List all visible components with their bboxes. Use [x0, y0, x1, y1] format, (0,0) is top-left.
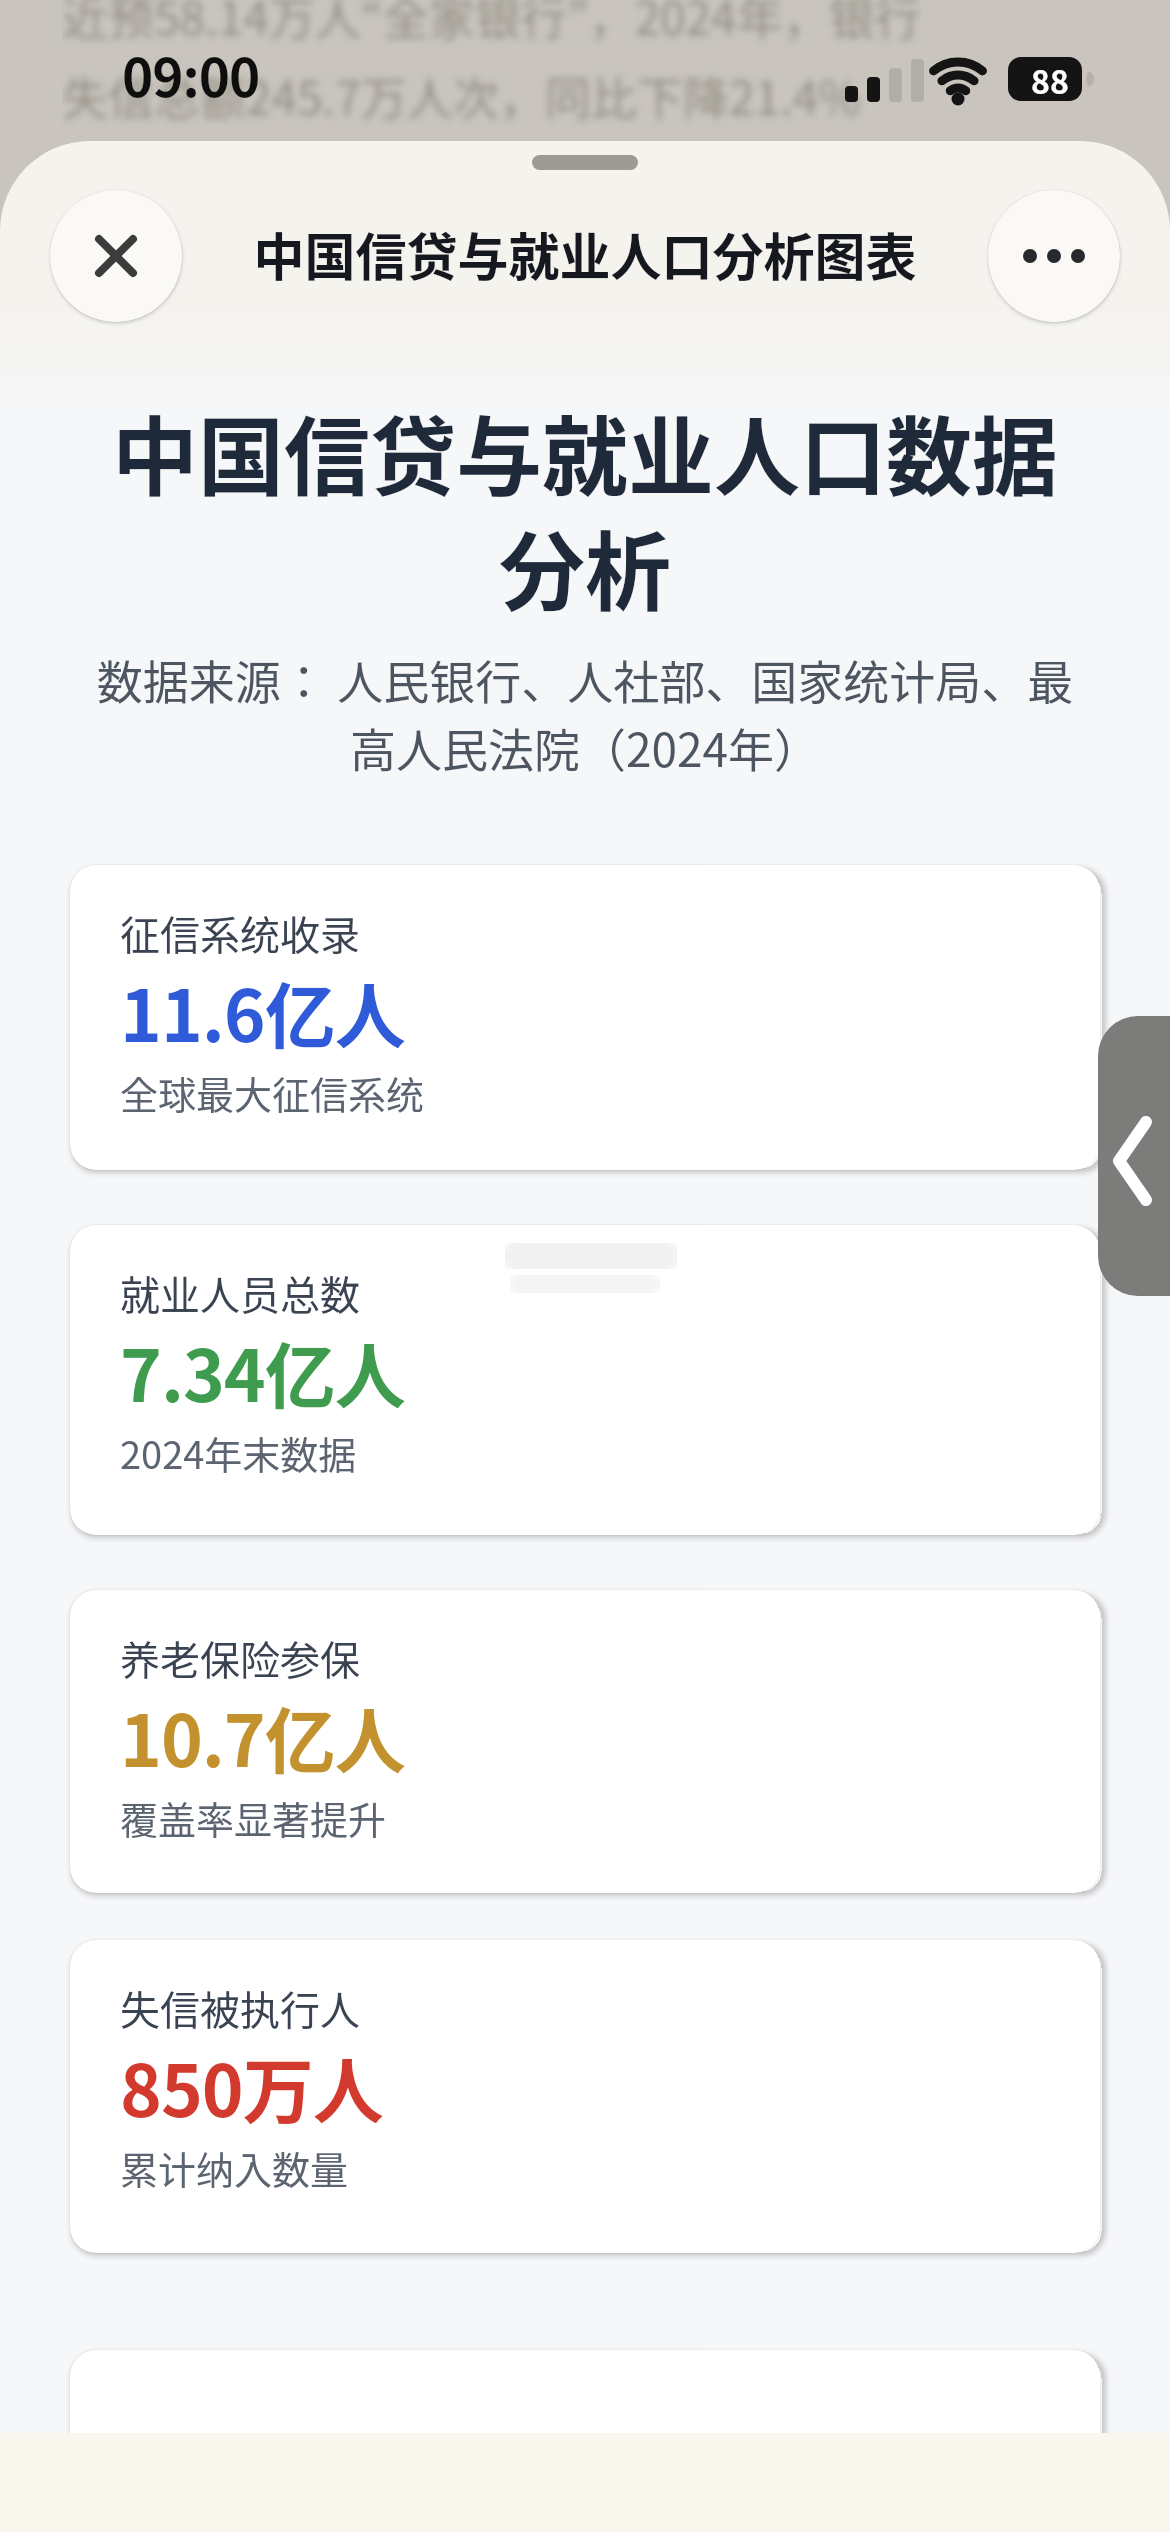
staticText: 88: [1025, 57, 1075, 103]
staticText: 覆盖率显著提升: [120, 1790, 387, 1845]
button[interactable]: 养老保险参保: [70, 1590, 1100, 1893]
staticText: 850万人: [120, 2035, 383, 2138]
staticText: 征信系统收录: [120, 904, 360, 962]
staticText: 失信被执行人: [120, 1979, 360, 2037]
staticText: 11.6亿人: [120, 960, 405, 1063]
staticText: 7.34亿人: [120, 1320, 405, 1423]
staticText: 10.7亿人: [120, 1685, 405, 1788]
staticText: 中国信贷与就业人口分析图表: [0, 217, 1170, 291]
button[interactable]: [1098, 1016, 1170, 1296]
staticText: 2024年末数据: [120, 1425, 357, 1480]
button[interactable]: 失信被执行人: [70, 1940, 1100, 2253]
staticText: 数据来源： 人民银行、人社部、国家统计局、最 高人民法院（2024年）: [0, 646, 1170, 780]
button[interactable]: 征信系统收录: [70, 865, 1100, 1170]
staticText: 失信总额245.7万人次，同比下降21.4%: [62, 62, 861, 129]
button[interactable]: [988, 190, 1120, 322]
button[interactable]: [50, 190, 182, 322]
staticText: 09:00: [122, 36, 260, 113]
staticText: 累计纳入数量: [120, 2140, 349, 2195]
staticText: 2024万人次通过使用信贷回归市场: [62, 142, 763, 209]
staticText: 近预58.14万人“全家银行”，2024年，银行: [62, 0, 921, 49]
staticText: 养老保险参保: [120, 1629, 360, 1687]
staticText: 中国信贷与就业人口数据 分析: [0, 389, 1170, 629]
button[interactable]: [70, 2350, 1100, 2532]
staticText: 全球最大征信系统: [120, 1065, 425, 1120]
button[interactable]: 就业人员总数: [70, 1225, 1100, 1535]
staticText: 就业人员总数: [120, 1264, 360, 1322]
